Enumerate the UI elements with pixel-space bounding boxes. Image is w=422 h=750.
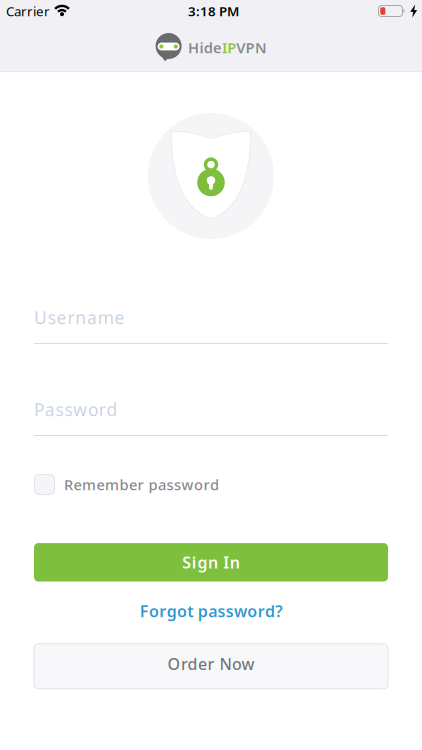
staticText: Forgot password? [140, 600, 282, 622]
staticText: Order Now [167, 653, 254, 674]
staticText: Password [34, 398, 118, 421]
button[interactable]: Order Now [34, 644, 388, 689]
button[interactable]: Username [34, 306, 388, 344]
staticText: Username [34, 306, 125, 329]
button[interactable]: HideIPVPN [155, 33, 267, 62]
staticText: 3:18 PM [188, 2, 239, 20]
staticText: Carrier [6, 2, 50, 20]
button[interactable]: Password [34, 398, 388, 436]
staticText: IP [222, 38, 236, 57]
staticText: Hide [188, 38, 222, 57]
button[interactable]: Sign In [34, 543, 388, 581]
button[interactable]: Remember password [34, 474, 388, 495]
button[interactable]: Forgot password? [140, 600, 282, 622]
staticText: VPN [236, 38, 267, 57]
staticText: Sign In [182, 552, 240, 573]
staticText: Remember password [64, 475, 219, 494]
